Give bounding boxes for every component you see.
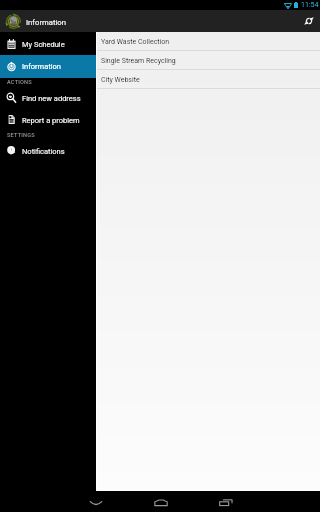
button[interactable]: Refresh — [298, 10, 320, 32]
button[interactable]: Home — [128, 491, 193, 512]
staticText: ACTIONS — [7, 79, 32, 86]
button[interactable]: Information — [0, 55, 96, 78]
button[interactable]: Single Stream Recycling — [96, 51, 320, 70]
button[interactable]: Recent apps — [193, 491, 258, 512]
button[interactable]: City Website — [96, 70, 320, 89]
staticText: 11:54 — [301, 1, 319, 9]
staticText: Yard Waste Collection — [101, 38, 170, 46]
staticText: Notifications — [22, 147, 65, 156]
staticText: SETTINGS — [7, 132, 35, 139]
button[interactable]: Back — [64, 491, 128, 512]
button[interactable]: Yard Waste Collection — [96, 32, 320, 51]
staticText: My Schedule — [22, 40, 65, 49]
staticText: Information — [22, 62, 61, 71]
staticText: Find new address — [22, 94, 81, 103]
staticText: Information — [26, 18, 66, 27]
button[interactable]: My Schedule — [0, 33, 96, 55]
button[interactable]: Find new address — [0, 87, 96, 109]
button[interactable]: Report a problem — [0, 109, 96, 131]
staticText: City Website — [101, 76, 140, 84]
button[interactable]: Notifications — [0, 140, 96, 162]
staticText: Report a problem — [22, 116, 80, 125]
staticText: Single Stream Recycling — [101, 57, 176, 65]
